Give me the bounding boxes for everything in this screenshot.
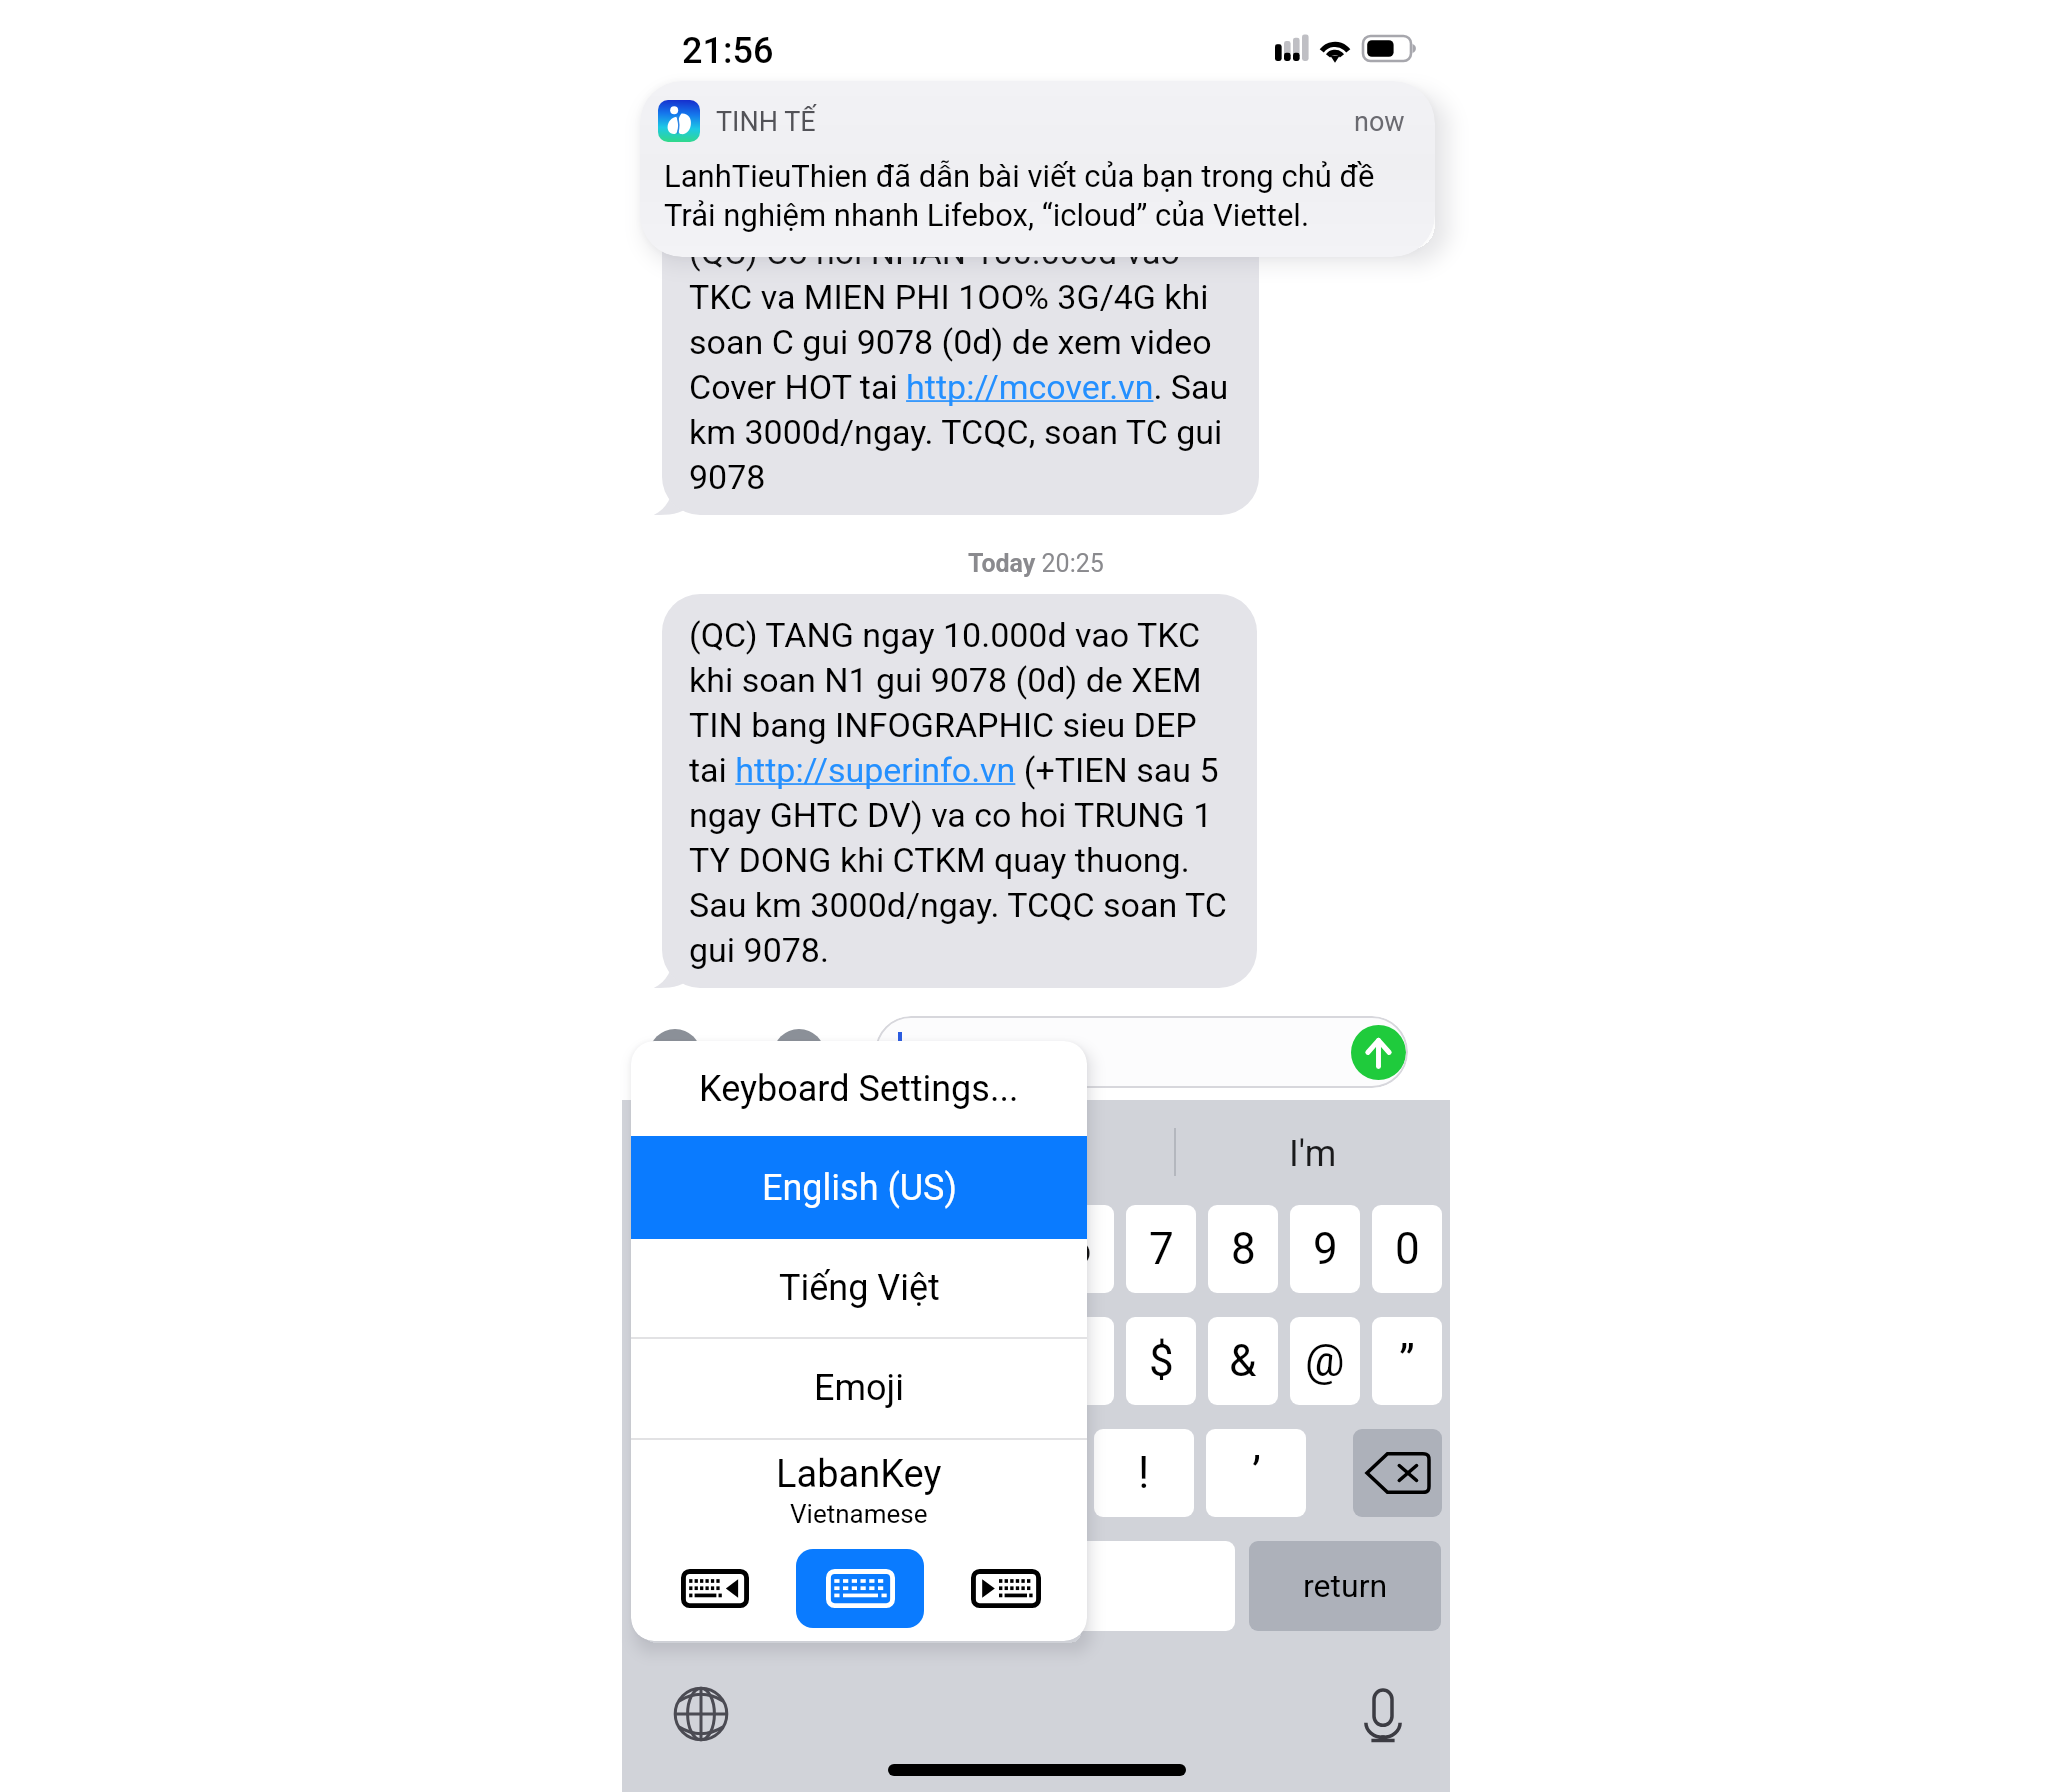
staticText: !	[1138, 1447, 1150, 1499]
button[interactable]: (QC) Co hoi NHAN 100.000d vao TKC va MIE…	[662, 211, 1259, 515]
staticText: 1	[657, 1223, 682, 1275]
button[interactable]: Keyboard Settings...	[631, 1041, 1087, 1136]
staticText: ”	[1399, 1335, 1415, 1387]
staticText: 9	[1313, 1223, 1338, 1275]
button[interactable]: 9	[1290, 1205, 1360, 1293]
staticText: 0	[1395, 1223, 1420, 1275]
button[interactable]: return	[1249, 1541, 1441, 1631]
button[interactable]: Dictate	[1354, 1687, 1412, 1743]
staticText: &	[1229, 1335, 1257, 1387]
staticText: .	[802, 1447, 814, 1499]
staticText: 21:56	[682, 30, 774, 72]
button[interactable]: ?	[982, 1429, 1082, 1517]
button[interactable]: 1	[634, 1205, 704, 1293]
button[interactable]: Next keyboard	[971, 1549, 1041, 1628]
button[interactable]: 8	[1208, 1205, 1278, 1293]
button[interactable]: @	[1290, 1317, 1360, 1405]
staticText: )	[1071, 1335, 1087, 1387]
staticText: 4	[903, 1223, 928, 1275]
button[interactable]: 3	[798, 1205, 868, 1293]
staticText: (	[989, 1335, 1005, 1387]
button[interactable]: ABC	[634, 1541, 762, 1629]
staticText: 7	[1149, 1223, 1174, 1275]
staticText: Emoji	[814, 1367, 904, 1409]
staticText: LabanKey	[776, 1452, 942, 1497]
button[interactable]: 4	[880, 1205, 950, 1293]
button[interactable]: $	[1126, 1317, 1196, 1405]
staticText: I'm	[1289, 1133, 1337, 1175]
staticText: ,	[916, 1447, 925, 1499]
staticText: TINH TẾ	[716, 106, 816, 138]
button[interactable]: Emoji	[631, 1337, 1087, 1438]
staticText: (QC) TANG ngay 10.000d vao TKC khi soan …	[689, 615, 1227, 970]
button[interactable]: 7	[1126, 1205, 1196, 1293]
button[interactable]: space	[774, 1541, 1235, 1631]
button[interactable]: (	[962, 1317, 1032, 1405]
staticText: ;	[910, 1335, 920, 1387]
button[interactable]: .	[758, 1429, 858, 1517]
staticText: LanhTieuThien đã dẫn bài viết của bạn tr…	[664, 158, 1375, 233]
button[interactable]: Previous keyboard	[681, 1549, 749, 1628]
button[interactable]: (QC) TANG ngay 10.000d vao TKC khi soan …	[662, 594, 1257, 988]
staticText: /	[742, 1335, 761, 1387]
button[interactable]: Send	[1351, 1025, 1406, 1080]
button[interactable]: 2	[716, 1205, 786, 1293]
button[interactable]: /	[716, 1317, 786, 1405]
staticText: (QC) Co hoi NHAN 100.000d vao TKC va MIE…	[689, 232, 1229, 497]
staticText: return	[1303, 1567, 1388, 1605]
staticText: Today 20:25	[968, 549, 1104, 578]
button[interactable]: Tiếng Việt	[631, 1239, 1087, 1337]
staticText: @	[1305, 1335, 1345, 1387]
staticText: 2	[739, 1223, 764, 1275]
staticText: -	[663, 1335, 676, 1387]
staticText: now	[1354, 106, 1405, 138]
staticText: Vietnamese	[790, 1499, 928, 1529]
button[interactable]: Send	[875, 1016, 1408, 1088]
button[interactable]: Camera	[649, 1029, 701, 1081]
staticText: English (US)	[762, 1167, 957, 1209]
button[interactable]: !	[1094, 1429, 1194, 1517]
staticText: ’	[1252, 1447, 1261, 1499]
button[interactable]: )	[1044, 1317, 1114, 1405]
staticText: Tiếng Việt	[779, 1267, 940, 1309]
button[interactable]: ;	[880, 1317, 950, 1405]
staticText: 8	[1231, 1223, 1256, 1275]
button[interactable]: 5	[962, 1205, 1032, 1293]
button[interactable]: -	[634, 1317, 704, 1405]
button[interactable]: Switch keyboard	[673, 1686, 729, 1742]
staticText: 6	[1067, 1223, 1092, 1275]
button[interactable]: ’	[1206, 1429, 1306, 1517]
button[interactable]: 6	[1044, 1205, 1114, 1293]
button[interactable]: ,	[870, 1429, 970, 1517]
button[interactable]: Current keyboard	[796, 1549, 924, 1628]
staticText: Keyboard Settings...	[699, 1068, 1019, 1110]
staticText: $	[1149, 1335, 1174, 1387]
button[interactable]: 0	[1372, 1205, 1442, 1293]
button[interactable]: &	[1208, 1317, 1278, 1405]
button[interactable]: Apps	[773, 1029, 825, 1081]
staticText: 5	[985, 1223, 1010, 1275]
staticText: :	[828, 1335, 839, 1387]
button[interactable]: I'm	[1176, 1100, 1450, 1204]
button[interactable]: English (US)	[631, 1136, 1087, 1239]
button[interactable]: Backspace	[1353, 1429, 1442, 1517]
button[interactable]: :	[798, 1317, 868, 1405]
button[interactable]: #+=	[634, 1429, 723, 1517]
staticText: 3	[821, 1223, 846, 1275]
button[interactable]: TINH TẾ	[640, 81, 1435, 257]
button[interactable]: ”	[1372, 1317, 1442, 1405]
staticText: ABC	[668, 1567, 728, 1603]
button[interactable]: LabanKey	[631, 1452, 1087, 1529]
